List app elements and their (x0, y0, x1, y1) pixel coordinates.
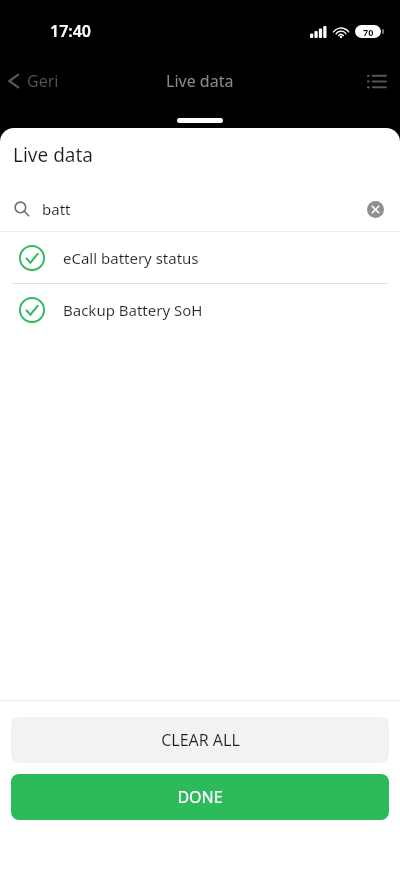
staticText: CLEAR ALL (161, 729, 240, 751)
staticText: Live data (166, 70, 234, 92)
staticText: Live data (13, 142, 94, 168)
button[interactable]: Clear search (362, 196, 388, 222)
button[interactable]: batt (0, 186, 400, 231)
button[interactable]: DONE (11, 774, 389, 820)
button[interactable]: Backup Battery SoH (0, 284, 400, 335)
staticText: Backup Battery SoH (63, 300, 203, 320)
button[interactable]: eCall battery status (0, 232, 400, 283)
button[interactable]: Geri (0, 64, 69, 98)
staticText: batt (42, 199, 71, 219)
staticText: eCall battery status (63, 248, 199, 268)
staticText: 70 (363, 26, 374, 38)
staticText: 17:40 (50, 20, 92, 42)
staticText: Geri (27, 70, 59, 92)
button[interactable]: Menu (353, 64, 400, 99)
staticText: DONE (177, 786, 223, 808)
button[interactable]: CLEAR ALL (11, 717, 389, 763)
